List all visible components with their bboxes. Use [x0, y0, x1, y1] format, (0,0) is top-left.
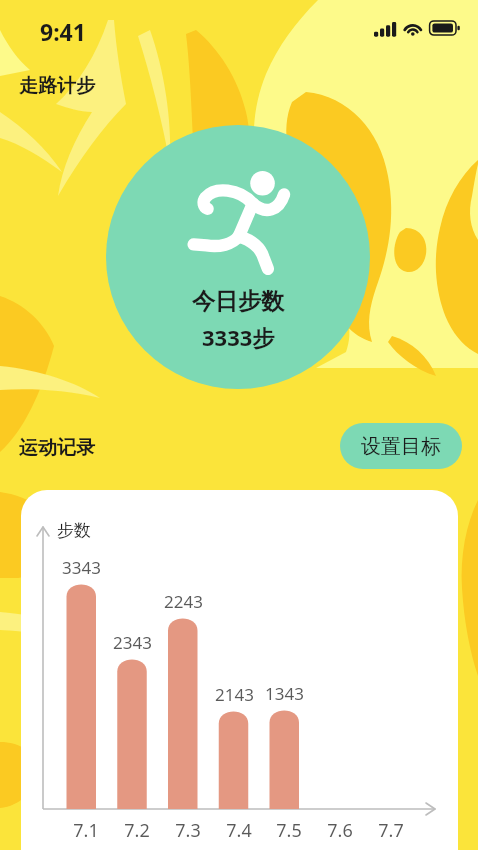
staticText: 走路计步: [19, 74, 95, 98]
staticText: 运动记录: [19, 436, 95, 460]
staticText: 设置目标: [361, 434, 441, 459]
staticText: 2343: [113, 631, 152, 654]
button[interactable]: 设置目标: [340, 423, 462, 469]
staticText: 3343: [62, 556, 101, 579]
staticText: 9:41: [40, 16, 86, 47]
staticText: 1343: [265, 682, 304, 705]
staticText: 2243: [164, 590, 203, 613]
staticText: 7.7: [378, 818, 404, 843]
button[interactable]: Running: [106, 125, 370, 389]
staticText: 3333步: [202, 322, 275, 352]
staticText: 7.4: [226, 818, 252, 843]
staticText: 7.1: [73, 818, 99, 843]
staticText: 7.6: [327, 818, 353, 843]
staticText: 7.3: [175, 818, 201, 843]
staticText: 今日步数: [192, 287, 284, 316]
other: Running: [185, 167, 297, 277]
staticText: 7.5: [276, 818, 302, 843]
staticText: 7.2: [124, 818, 150, 843]
staticText: 2143: [215, 683, 254, 706]
staticText: 步数: [57, 520, 91, 541]
